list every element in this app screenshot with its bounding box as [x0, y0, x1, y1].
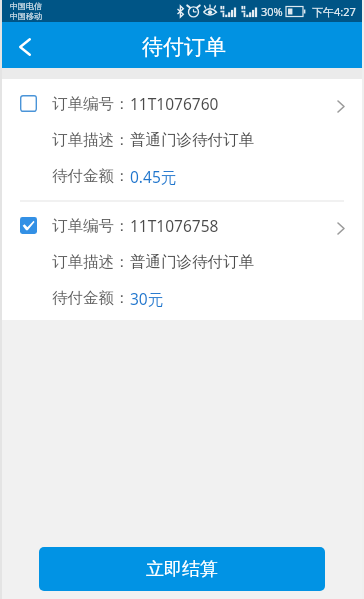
staticText: 普通门诊待付订单	[130, 130, 254, 150]
staticText: 11T1076760	[130, 93, 219, 114]
staticText: 待付订单	[142, 34, 226, 60]
button[interactable]: 立即结算	[39, 547, 325, 591]
staticText: 0.45元	[130, 166, 177, 187]
staticText: 立即结算	[146, 558, 218, 581]
staticText: 下午4:27	[312, 4, 356, 19]
staticText: 订单编号：	[52, 216, 130, 236]
staticText: 普通门诊待付订单	[130, 252, 254, 272]
staticText: 30%	[261, 4, 283, 19]
staticText: 订单描述：	[52, 130, 130, 150]
staticText: 待付金额：	[52, 288, 130, 308]
staticText: 中国移动	[10, 11, 42, 21]
staticText: 订单描述：	[52, 252, 130, 272]
button[interactable]: 订单编号：	[0, 202, 364, 320]
staticText: 中国电信	[10, 1, 42, 11]
button[interactable]: 订单编号：	[0, 79, 364, 200]
staticText: 待付金额：	[52, 166, 130, 186]
staticText: 30元	[130, 288, 164, 309]
staticText: 11T1076758	[130, 215, 219, 236]
staticText: 订单编号：	[52, 94, 130, 114]
button[interactable]: Back	[0, 22, 49, 68]
